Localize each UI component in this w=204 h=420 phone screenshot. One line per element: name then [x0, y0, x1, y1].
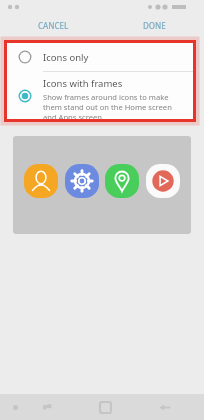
button[interactable]: Icons only	[7, 43, 193, 71]
button[interactable]: Settings	[65, 164, 99, 198]
staticText: Icons with frames	[43, 77, 123, 90]
staticText: Icons only	[43, 51, 89, 64]
button[interactable]: Video player	[146, 164, 180, 198]
button[interactable]: Contacts	[24, 164, 58, 198]
button[interactable]: CANCEL	[34, 18, 73, 33]
button[interactable]: Back	[154, 397, 174, 417]
button[interactable]: DONE	[139, 18, 170, 33]
button[interactable]: Home	[95, 397, 115, 417]
button[interactable]: Maps	[105, 164, 139, 198]
staticText: Show frames around icons to make them st…	[43, 92, 183, 119]
button[interactable]: Icons with frames	[7, 72, 193, 119]
button[interactable]: Recent apps	[38, 398, 56, 416]
button[interactable]: Recents indicator	[8, 400, 22, 414]
staticText: DONE	[143, 20, 166, 31]
staticText: CANCEL	[38, 20, 69, 31]
